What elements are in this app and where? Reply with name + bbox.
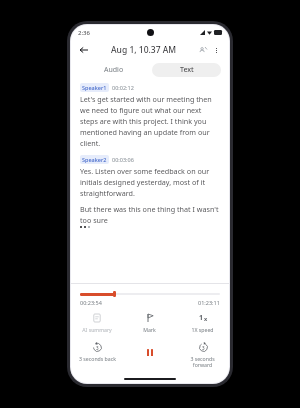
staticText: Audio bbox=[104, 65, 124, 75]
staticText: 00:03:06 bbox=[112, 156, 134, 163]
other: Back 3 seconds bbox=[93, 343, 102, 352]
button[interactable]: Audio bbox=[79, 63, 148, 77]
staticText: Speaker1 bbox=[82, 84, 107, 91]
staticText: Speaker2 bbox=[82, 156, 107, 163]
staticText: 00:23:54 bbox=[80, 299, 102, 306]
staticText: x bbox=[204, 315, 208, 322]
staticText: 1X speed bbox=[191, 326, 214, 333]
button[interactable]: More options bbox=[210, 44, 223, 57]
other: Forward 3 seconds bbox=[199, 343, 208, 352]
staticText: 1 bbox=[199, 313, 204, 323]
button[interactable]: Mark bbox=[123, 312, 176, 334]
staticText: Text bbox=[180, 65, 194, 75]
button[interactable]: Back bbox=[77, 43, 91, 57]
staticText: But there was this one thing that I wasn… bbox=[80, 204, 220, 225]
staticText: 2:36 bbox=[78, 29, 90, 37]
staticText: Aug 1, 10.37 AM bbox=[111, 44, 177, 56]
button[interactable]: AI summary bbox=[71, 312, 123, 334]
staticText: 3 bbox=[202, 345, 205, 351]
staticText: 3 seconds back bbox=[79, 355, 116, 362]
button[interactable]: Pause bbox=[139, 341, 161, 363]
staticText: 01:23:11 bbox=[198, 299, 220, 306]
staticText: AI summary bbox=[82, 326, 112, 333]
staticText: Yes. Listen over some feedback on our in… bbox=[80, 166, 220, 198]
button[interactable]: Back 3 seconds bbox=[71, 341, 123, 363]
button[interactable]: Forward 3 seconds bbox=[176, 341, 229, 370]
staticText: 3 seconds forward bbox=[190, 355, 215, 369]
button[interactable]: Edit speakers bbox=[197, 44, 210, 57]
staticText: Mark bbox=[143, 326, 156, 333]
staticText: 3 bbox=[96, 345, 99, 351]
staticText: 00:02:12 bbox=[112, 84, 134, 91]
button[interactable]: 1 bbox=[176, 312, 229, 334]
staticText: Let's get started with our meeting then … bbox=[80, 94, 220, 148]
button[interactable]: Text bbox=[152, 63, 221, 77]
